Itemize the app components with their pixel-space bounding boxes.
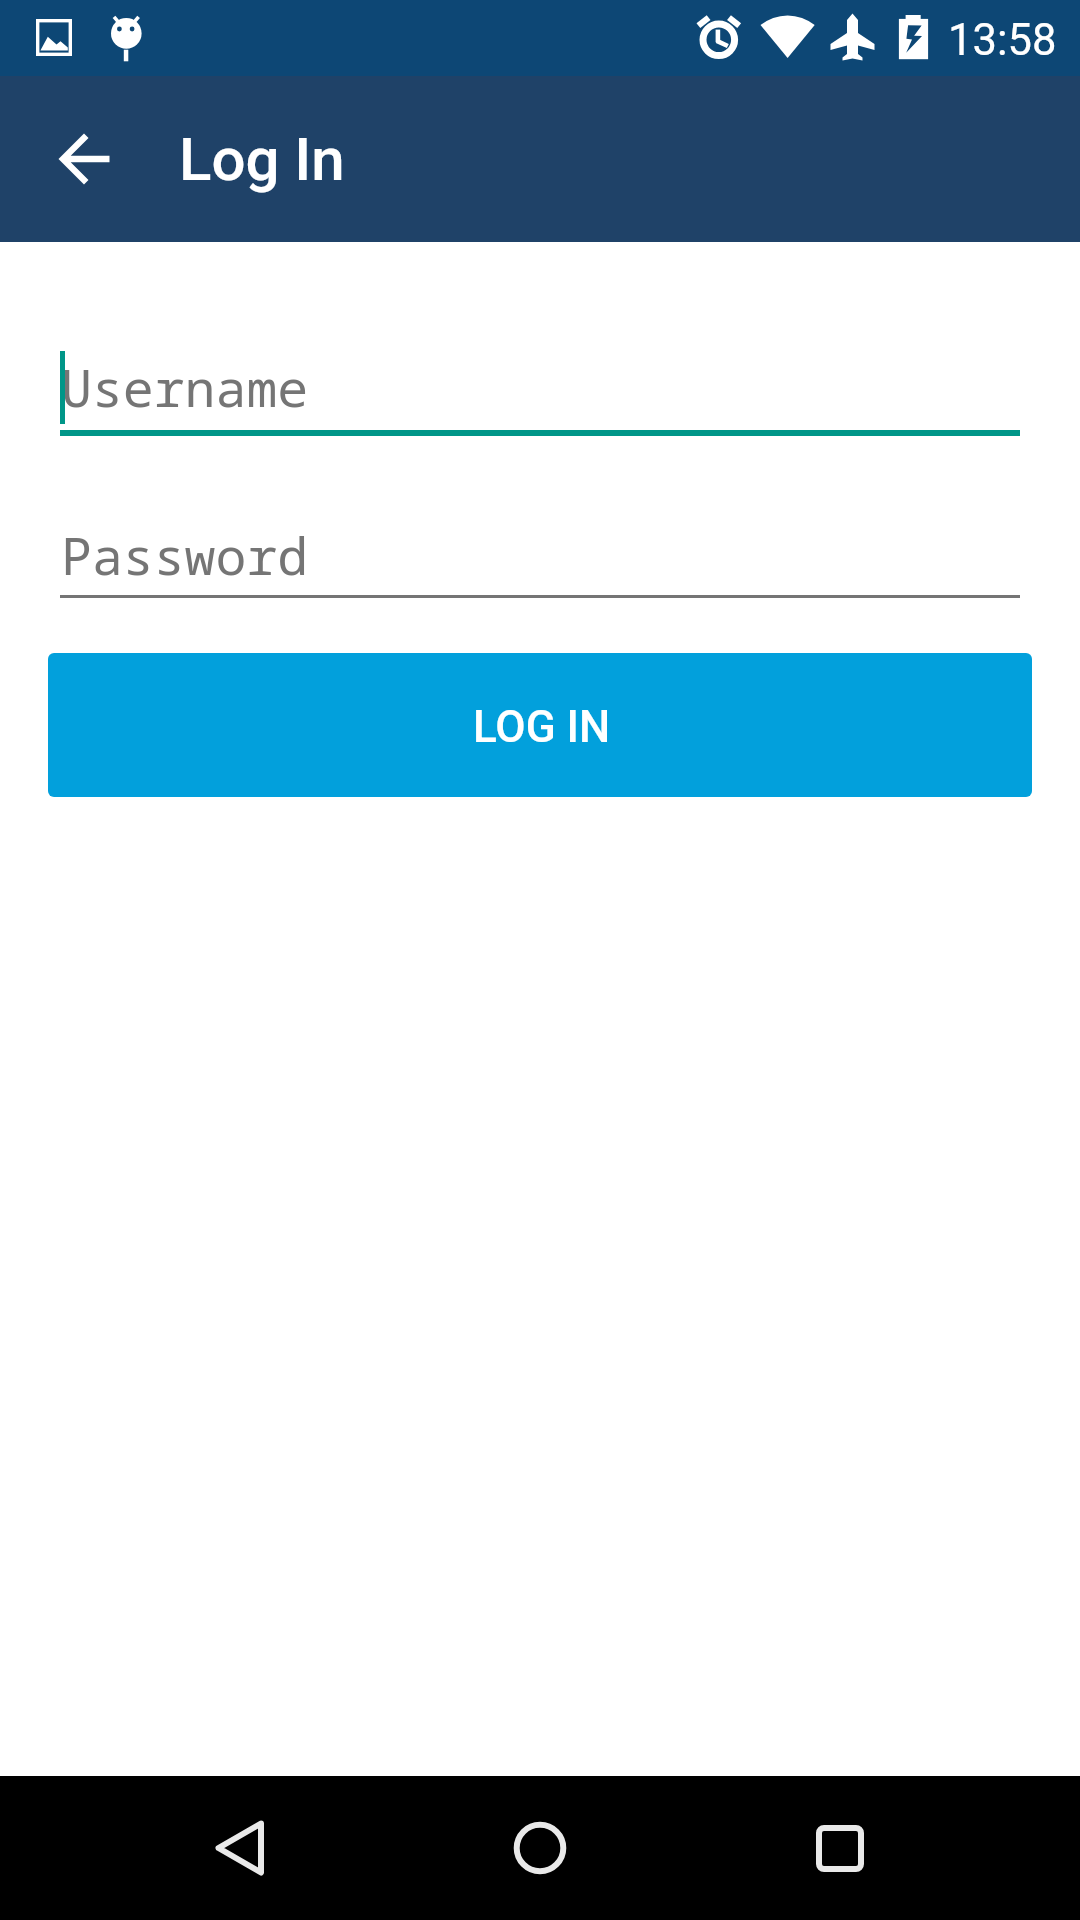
- button[interactable]: Back: [168, 1776, 312, 1920]
- button[interactable]: Username: [60, 340, 1020, 436]
- button[interactable]: Navigate up: [36, 111, 132, 207]
- staticText: Log In: [179, 124, 345, 194]
- staticText: LOG IN: [473, 701, 611, 753]
- button[interactable]: Recent apps: [768, 1776, 912, 1920]
- button[interactable]: Password: [60, 508, 1020, 601]
- button[interactable]: Home: [468, 1776, 612, 1920]
- staticText: Password: [61, 520, 309, 590]
- staticText: 13:58: [948, 15, 1057, 66]
- button[interactable]: LOG IN: [48, 653, 1032, 797]
- staticText: Username: [61, 352, 309, 422]
